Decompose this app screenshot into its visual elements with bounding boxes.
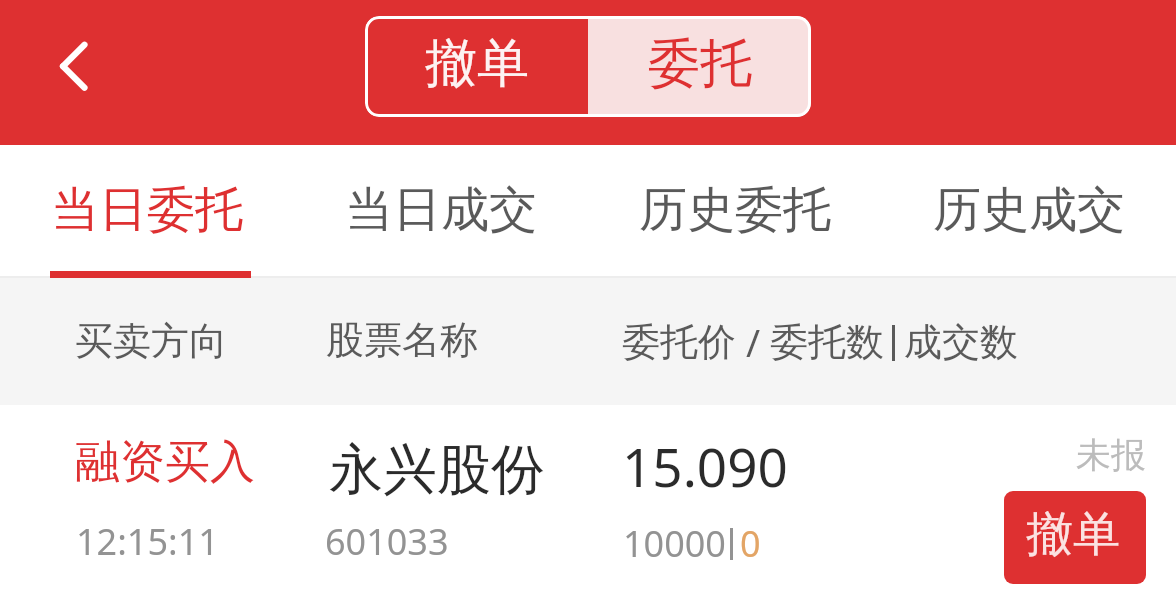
staticText: 0 [740,519,761,568]
staticText: 成交数 [904,318,1018,366]
staticText: 买卖方向 [75,317,227,365]
staticText: / [746,316,761,368]
button[interactable]: Back [0,0,140,145]
staticText: 601033 [325,517,449,566]
button[interactable]: 历史成交 [882,145,1176,276]
button[interactable]: 历史委托 [588,145,882,276]
button[interactable]: 撤单 [1004,491,1146,584]
staticText: 委托数 [770,318,884,366]
staticText: 历史委托 [639,180,831,240]
staticText: 当日委托 [51,180,243,240]
staticText: 10000 [623,519,726,568]
staticText: 委托价 [622,318,736,366]
staticText: 融资买入 [75,434,255,491]
button[interactable]: 融资买入 [0,405,1176,598]
staticText: 股票名称 [326,316,478,364]
button[interactable]: 当日成交 [294,145,588,276]
staticText: 永兴股份 [329,436,545,504]
button[interactable]: 当日委托 [0,145,294,276]
staticText: 当日成交 [345,180,537,240]
staticText: 15.090 [622,430,788,502]
button[interactable]: 撤单 [365,16,588,117]
button[interactable]: 委托 [588,16,811,117]
staticText: 撤单 [425,31,529,97]
staticText: 12:15:11 [76,517,219,566]
staticText: 历史成交 [933,180,1125,240]
staticText: 撤单 [1026,505,1120,564]
staticText: 委托 [648,31,752,97]
staticText: 未报 [1076,433,1146,477]
